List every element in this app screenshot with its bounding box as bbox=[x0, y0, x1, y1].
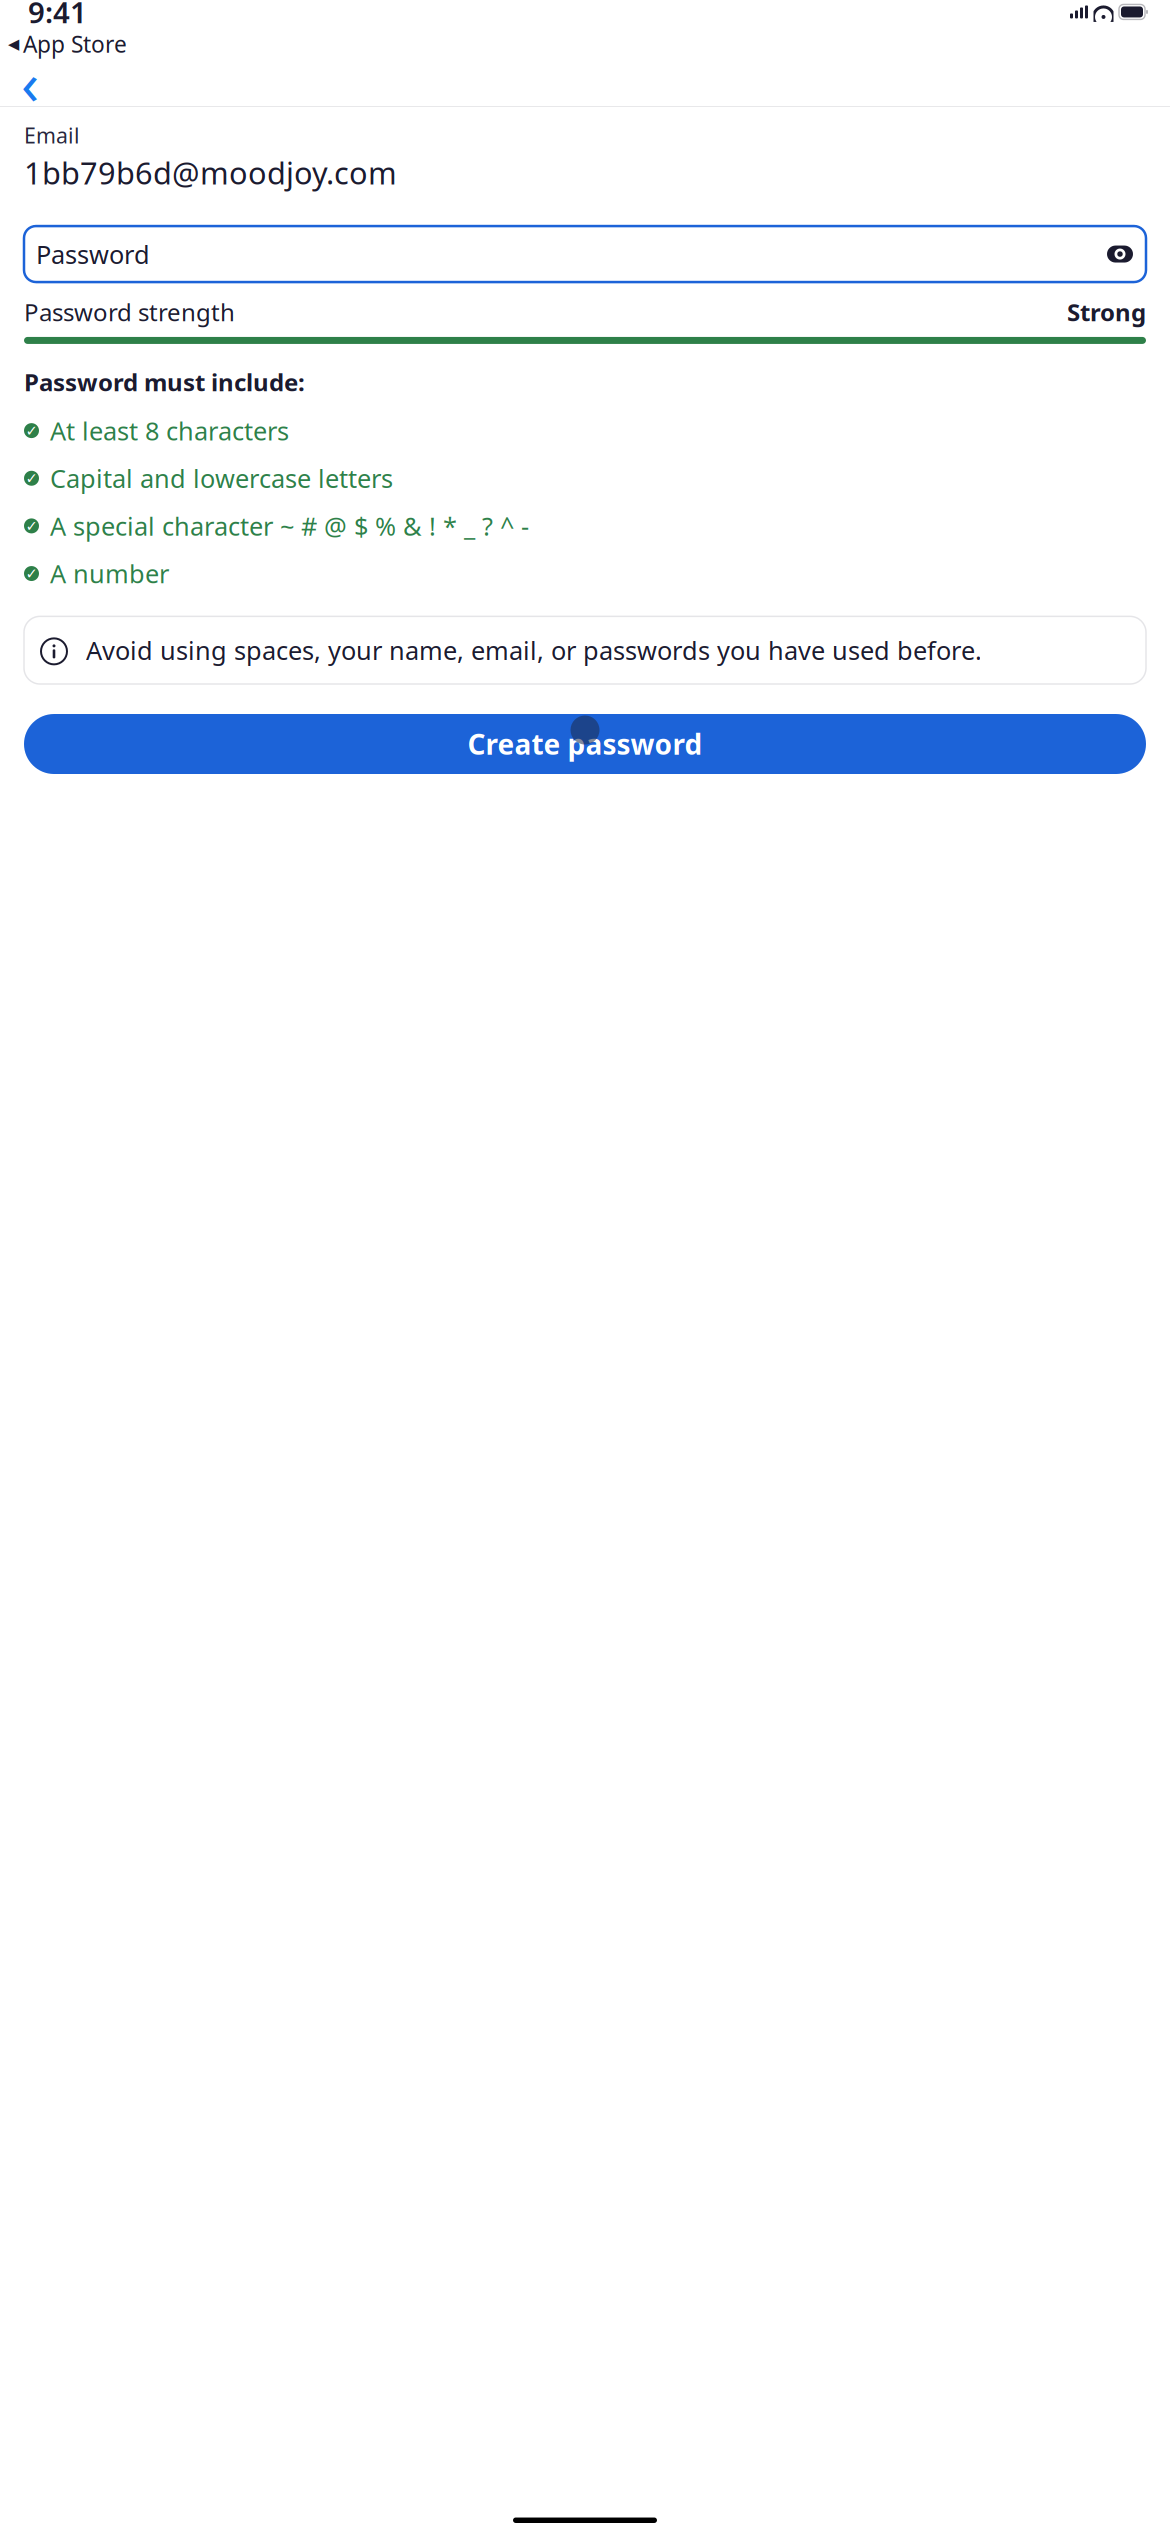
staticText: Password bbox=[36, 237, 150, 271]
button[interactable]: Back bbox=[8, 62, 52, 102]
button[interactable]: ◀ bbox=[0, 27, 127, 61]
staticText: App Store bbox=[23, 29, 127, 59]
staticText: ‹ bbox=[21, 43, 39, 121]
staticText: Strong bbox=[1067, 296, 1146, 328]
staticText: A number bbox=[50, 557, 169, 590]
staticText: A special character ~ # @ $ % & ! * _ ? … bbox=[50, 509, 529, 543]
staticText: ✓ bbox=[25, 422, 37, 439]
staticText: Avoid using spaces, your name, email, or… bbox=[86, 633, 982, 667]
staticText: ✓ bbox=[25, 518, 37, 534]
staticText: 1bb79b6d@moodjoy.com bbox=[24, 152, 397, 193]
staticText: Password strength bbox=[24, 296, 235, 328]
staticText: ✓ bbox=[25, 565, 37, 582]
staticText: ✓ bbox=[25, 470, 37, 486]
staticText: Create password bbox=[467, 725, 702, 763]
staticText: Capital and lowercase letters bbox=[50, 461, 393, 495]
staticText: 9:41 bbox=[28, 0, 87, 31]
staticText: At least 8 characters bbox=[50, 414, 289, 447]
button[interactable]: Create password bbox=[24, 714, 1146, 774]
staticText: ◀ bbox=[8, 36, 19, 52]
button[interactable]: Password bbox=[24, 226, 1146, 282]
staticText: Email bbox=[24, 121, 80, 149]
staticText: Password must include: bbox=[24, 366, 305, 398]
